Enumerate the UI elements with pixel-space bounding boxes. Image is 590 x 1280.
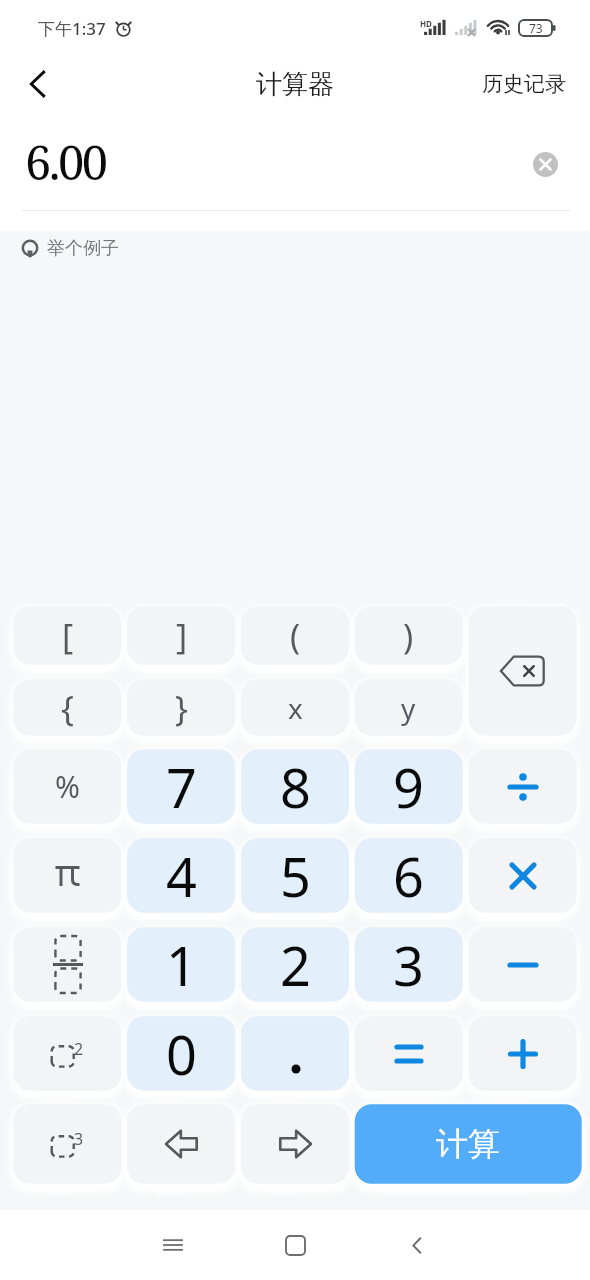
button[interactable]: 9 (354, 749, 463, 824)
staticText: 5 (280, 839, 311, 913)
button[interactable]: Back (10, 56, 66, 112)
staticText: 3 (74, 1128, 84, 1150)
button[interactable]: Recents (142, 1214, 204, 1276)
staticText: 0 (166, 1017, 197, 1091)
staticText: 73 (529, 20, 543, 36)
button[interactable]: % (13, 749, 122, 824)
staticText: 4 (166, 839, 197, 913)
staticText: 7 (166, 750, 197, 824)
staticText: 计算 (436, 1124, 500, 1164)
button[interactable]: Home (264, 1214, 326, 1276)
staticText: ( (290, 613, 301, 659)
staticText: ] (176, 613, 188, 659)
button[interactable]: 1 (127, 927, 236, 1002)
button[interactable]: Square (13, 1016, 122, 1091)
button[interactable]: 0 (127, 1016, 236, 1091)
button[interactable]: 2 (241, 927, 350, 1002)
staticText: % (55, 766, 80, 807)
button[interactable]: 4 (127, 838, 236, 913)
staticText: x (288, 689, 303, 727)
staticText: 2 (74, 1038, 84, 1060)
button[interactable]: 历史记录 (458, 57, 590, 111)
button[interactable]: y (354, 679, 463, 736)
staticText: 1 (166, 928, 197, 1002)
button[interactable]: Move left (127, 1104, 236, 1184)
button[interactable]: Minus (468, 927, 577, 1002)
button[interactable]: Plus (468, 1016, 577, 1091)
button[interactable]: Divide (468, 749, 577, 824)
button[interactable]: ( (241, 606, 350, 665)
staticText: [ (62, 613, 74, 659)
staticText: { (61, 685, 74, 731)
staticText: y (401, 689, 416, 727)
staticText: 2 (280, 928, 311, 1002)
button[interactable]: ) (354, 606, 463, 665)
button[interactable]: 3 (354, 927, 463, 1002)
button[interactable]: Back (386, 1214, 448, 1276)
staticText: 下午1:37 (38, 17, 106, 40)
staticText: 6.00 (25, 130, 106, 194)
staticText: 9 (393, 750, 424, 824)
button[interactable]: 8 (241, 749, 350, 824)
staticText: ) (403, 613, 414, 659)
button[interactable]: Cube (13, 1104, 122, 1184)
staticText: 8 (280, 750, 311, 824)
button[interactable]: Multiply (468, 838, 577, 913)
staticText: 计算器 (256, 68, 334, 101)
button[interactable]: { (13, 679, 122, 736)
button[interactable]: 7 (127, 749, 236, 824)
button[interactable]: 5 (241, 838, 350, 913)
staticText: 6 (393, 839, 424, 913)
button[interactable]: 6 (354, 838, 463, 913)
button[interactable]: Pi (13, 838, 122, 913)
button[interactable]: Fraction (13, 927, 122, 1002)
staticText: 3 (393, 928, 424, 1002)
button[interactable]: Move right (241, 1104, 350, 1184)
button[interactable]: Equals (354, 1016, 463, 1091)
button[interactable]: Decimal point (241, 1016, 350, 1091)
staticText: HD (420, 18, 432, 29)
button[interactable]: 计算 (354, 1104, 582, 1184)
button[interactable]: 举个例子 (20, 237, 119, 260)
button[interactable]: ] (127, 606, 236, 665)
button[interactable]: x (241, 679, 350, 736)
button[interactable]: [ (13, 606, 122, 665)
staticText: } (175, 685, 188, 731)
button[interactable]: } (127, 679, 236, 736)
staticText: 历史记录 (482, 71, 566, 97)
staticText: 举个例子 (47, 237, 119, 260)
button[interactable]: Clear (528, 147, 562, 181)
button[interactable]: Backspace (468, 606, 577, 736)
